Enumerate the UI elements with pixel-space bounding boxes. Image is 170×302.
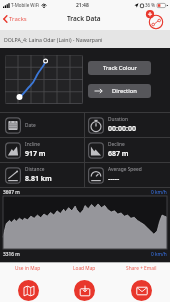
button[interactable] xyxy=(145,9,167,31)
staticText: Use in Map xyxy=(15,265,41,272)
button[interactable]: Tracks xyxy=(3,15,27,23)
button[interactable]: Average Speed xyxy=(85,163,170,187)
button[interactable]: Decline xyxy=(85,138,170,162)
button[interactable]: Incline xyxy=(0,138,84,162)
staticText: Decline xyxy=(108,141,125,148)
staticText: Track Colour xyxy=(103,64,137,72)
staticText: Incline xyxy=(25,141,41,148)
staticText: DOLPA_4: Laina Odar (Laini) - Nawarpani xyxy=(4,36,103,43)
staticText: 3697 m xyxy=(3,189,20,196)
staticText: Average Speed xyxy=(108,166,142,173)
button[interactable]: Direction xyxy=(88,84,151,98)
button[interactable]: Share + Email xyxy=(113,263,170,302)
button[interactable]: Use in Map xyxy=(0,263,56,302)
staticText: 21:48 xyxy=(76,2,89,9)
staticText: 687 m xyxy=(108,149,129,159)
staticText: Track Data xyxy=(67,14,101,23)
staticText: Direction xyxy=(112,87,137,95)
staticText: Load Map xyxy=(73,265,96,272)
staticText: 3316 m xyxy=(3,251,20,258)
button[interactable]: Load Map xyxy=(56,263,113,302)
staticText: 0 km/h xyxy=(151,189,167,196)
staticText: 8.81 km xyxy=(25,174,52,184)
button[interactable]: Track Colour xyxy=(88,61,151,75)
staticText: Distance xyxy=(25,166,45,173)
staticText: Share + Email xyxy=(126,265,157,272)
staticText: Tracks xyxy=(9,15,27,23)
button[interactable]: Distance xyxy=(0,163,84,187)
staticText: ----- xyxy=(108,174,120,184)
staticText: Date xyxy=(25,122,36,129)
staticText: T-Mobile WiFi xyxy=(11,2,40,8)
button[interactable]: Duration xyxy=(85,113,170,137)
staticText: 0 km/h xyxy=(151,251,167,258)
staticText: 00:00:00 xyxy=(108,124,136,134)
button[interactable] xyxy=(5,55,83,104)
staticText: Duration xyxy=(108,116,128,123)
staticText: 36 % xyxy=(145,2,156,8)
staticText: 917 m xyxy=(25,149,46,159)
button[interactable]: Date xyxy=(0,113,84,137)
